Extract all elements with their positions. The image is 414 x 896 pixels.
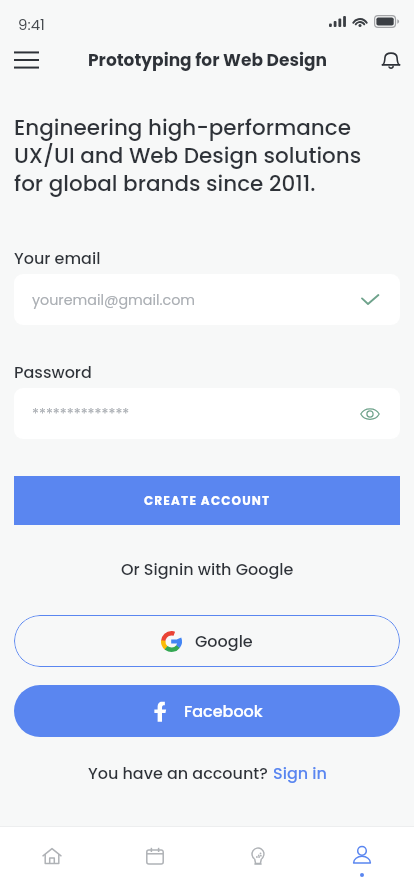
button[interactable]: Profile bbox=[310, 827, 414, 896]
staticText: Your email bbox=[14, 247, 101, 269]
staticText: CREATE ACCOUNT bbox=[144, 492, 271, 509]
staticText: ************** bbox=[32, 404, 130, 424]
button[interactable]: CREATE ACCOUNT bbox=[14, 476, 400, 525]
button[interactable]: Google bbox=[14, 615, 400, 667]
button[interactable]: Facebook bbox=[14, 685, 400, 737]
button[interactable]: Your email field bbox=[14, 274, 400, 325]
staticText: youremail@gmail.com bbox=[32, 290, 196, 310]
button[interactable]: Home bbox=[0, 827, 103, 896]
button[interactable]: Notifications bbox=[369, 40, 413, 80]
staticText: Facebook bbox=[184, 700, 263, 722]
staticText: Or Signin with Google bbox=[121, 558, 294, 580]
button[interactable]: Sign in bbox=[273, 762, 327, 784]
staticText: You have an account? bbox=[88, 762, 273, 784]
button[interactable]: Menu bbox=[0, 40, 52, 80]
button[interactable]: Calendar bbox=[103, 827, 206, 896]
staticText: Engineering high-performance UX/UI and W… bbox=[14, 112, 362, 198]
staticText: 9:41 bbox=[18, 14, 45, 35]
staticText: Google bbox=[195, 630, 253, 652]
button[interactable]: Ideas bbox=[206, 827, 310, 896]
button[interactable]: Password field bbox=[14, 388, 400, 439]
staticText: Password bbox=[14, 361, 92, 383]
staticText: Prototyping for Web Design bbox=[88, 48, 327, 72]
